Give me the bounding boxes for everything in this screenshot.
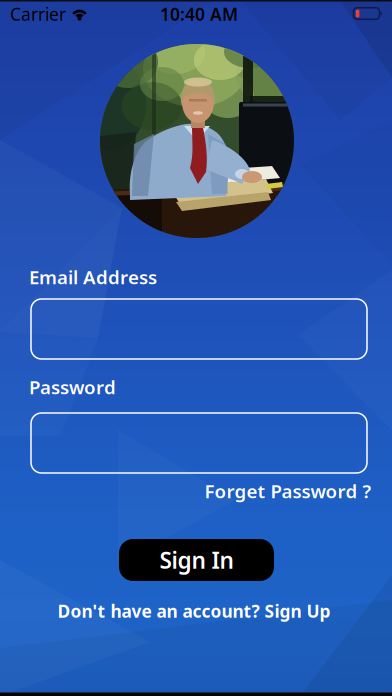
- staticText: Carrier: [10, 2, 66, 25]
- staticText: Password: [29, 375, 116, 399]
- button[interactable]: Password: [31, 413, 367, 473]
- staticText: Sign In: [159, 545, 233, 575]
- button[interactable]: Forget Password ?: [204, 479, 371, 503]
- button[interactable]: Don't have an account? Sign Up: [57, 599, 330, 622]
- staticText: Don't have an account? Sign Up: [57, 599, 330, 622]
- staticText: 10:40 AM: [160, 2, 238, 25]
- staticText: Email Address: [29, 265, 157, 289]
- button[interactable]: Sign In: [119, 539, 274, 581]
- staticText: Forget Password ?: [204, 479, 371, 503]
- button[interactable]: Email Address: [31, 299, 367, 359]
